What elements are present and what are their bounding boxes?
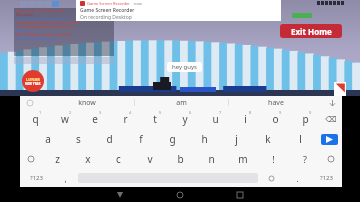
button[interactable]: 9 [260,109,290,129]
button[interactable]: Shift [20,149,42,169]
button[interactable]: 6 [170,109,200,129]
staticText: NEW YEAR [25,82,41,86]
button[interactable]: 2 [50,109,80,129]
staticText: 1 [39,110,42,115]
staticText: 9 [279,110,282,115]
staticText: ?123 [320,174,333,182]
staticText: 0 [309,110,312,115]
staticText: [Re-excited] [16,13,33,17]
button[interactable]: 5 [140,109,170,129]
button[interactable]: Emoji [320,149,342,169]
button[interactable]: v [134,149,165,169]
button[interactable]: n [196,149,227,169]
button[interactable]: Toolbar icon [52,1,59,7]
staticText: [witer] randomtrading is opening a fixed… [16,21,79,25]
staticText: Exit Home [291,26,332,37]
button[interactable]: have [229,96,322,109]
button[interactable]: Home [150,187,210,202]
button[interactable]: 3 [80,109,110,129]
button[interactable]: 8 [230,109,260,129]
staticText: Game Screen Recorder [80,7,135,14]
staticText: f [139,132,143,146]
staticText: [V3] CZ2111 i don't have any money's [16,17,69,21]
staticText: randomtrading based a bick Theme Tag [16,25,74,29]
button[interactable]: c [103,149,134,169]
staticText: v [147,152,153,166]
button[interactable]: m [227,149,258,169]
staticText: a [45,132,51,146]
button[interactable]: 4 [110,109,140,129]
staticText: d [106,132,113,146]
staticText: ⌫ [325,115,337,124]
button[interactable]: x [72,149,103,169]
button[interactable]: a [32,129,63,149]
staticText: e [92,112,98,126]
staticText: NM--- GIZ] abc be a world so and fly rob [16,33,72,37]
staticText: l [299,132,302,146]
button[interactable]: ?123 [310,169,342,187]
staticText: z [55,152,60,166]
button[interactable]: , [52,169,78,187]
staticText: n [208,152,215,166]
button[interactable]: 0 [290,109,320,129]
button[interactable]: Lunar New Year [22,70,44,92]
staticText: LUNAR [26,77,40,82]
button[interactable]: d [94,129,125,149]
staticText: 2 [69,110,72,115]
button[interactable]: Game Screen Recorder [76,0,281,21]
staticText: am [176,98,187,108]
staticText: p [302,112,309,126]
button[interactable]: z [42,149,72,169]
staticText: 5 [159,110,162,115]
button[interactable]: 7 [200,109,230,129]
button[interactable]: 1 [20,109,50,129]
button[interactable]: . [284,169,310,187]
staticText: y [182,112,188,126]
staticText: h [201,132,208,146]
staticText: j [235,132,238,146]
staticText: r [123,112,128,126]
staticText: . [296,173,299,184]
staticText: u [212,112,219,126]
staticText: ! [272,153,275,165]
staticText: k [265,132,271,146]
staticText: 3 [99,110,102,115]
staticText: ?123 [30,174,43,182]
button[interactable]: More suggestions [322,96,342,109]
button[interactable]: j [220,129,252,149]
button[interactable] [14,57,114,64]
staticText: o [272,112,279,126]
button[interactable]: f [125,129,156,149]
button[interactable]: Back [90,187,150,202]
staticText: g [169,132,176,146]
button[interactable]: Send [316,129,342,149]
staticText: x [85,152,91,166]
staticText: [V3] Lendhire---GIZ] hey guys [16,37,57,41]
button[interactable]: ? [289,149,320,169]
staticText: Game Screen Recorder [87,1,130,6]
button[interactable]: h [188,129,220,149]
button[interactable]: ! [258,149,289,169]
button[interactable]: know [40,96,134,109]
button[interactable]: Settings [258,169,284,187]
button[interactable]: l [284,129,316,149]
staticText: b [177,152,184,166]
button[interactable]: b [165,149,196,169]
button[interactable]: Expand [20,96,40,109]
button[interactable]: Recents [210,187,270,202]
button[interactable]: s [63,129,94,149]
button[interactable]: k [252,129,284,149]
button[interactable]: ?123 [20,169,52,187]
staticText: , [64,173,67,184]
button[interactable]: Backspace [320,109,342,129]
staticText: know [78,98,96,108]
button[interactable]: Exit Home [280,24,342,38]
button[interactable]: g [156,129,188,149]
staticText: 6 [189,110,192,115]
button[interactable]: am [135,96,228,109]
